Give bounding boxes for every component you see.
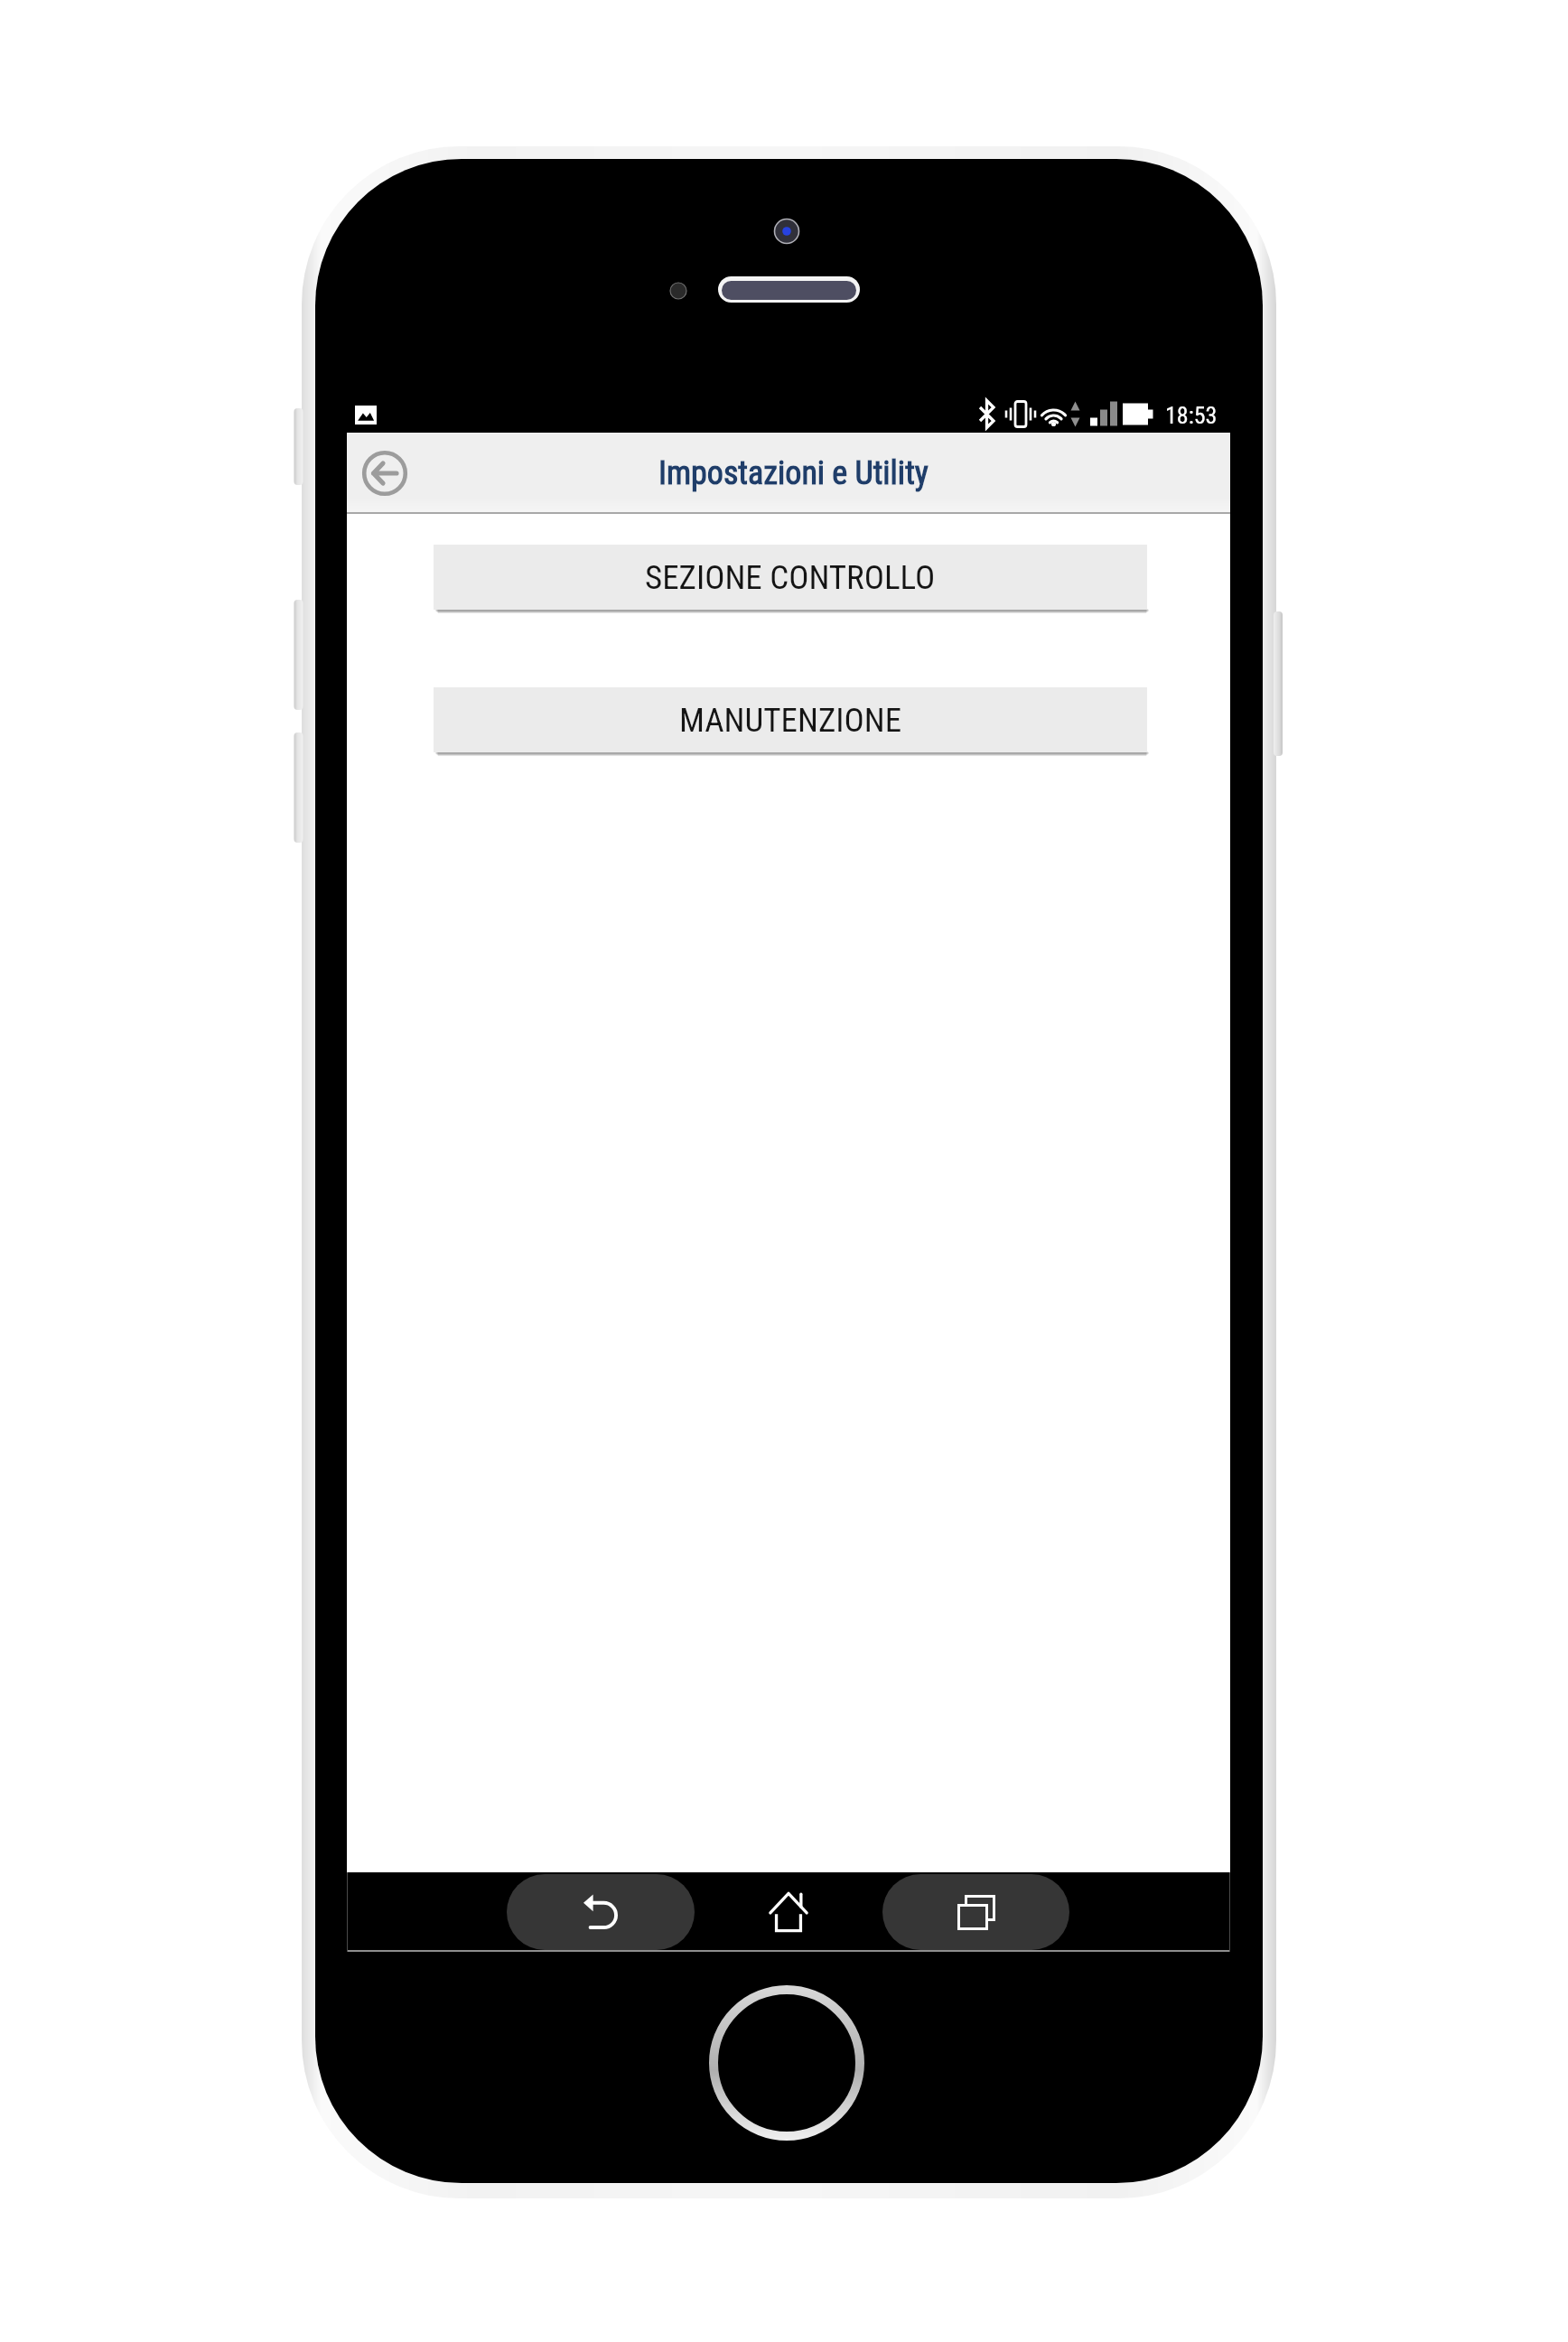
button[interactable]: Recent apps: [882, 1874, 1069, 1950]
staticText: Impostazioni e Utility: [658, 454, 929, 492]
button[interactable]: Back: [507, 1874, 695, 1950]
button[interactable]: Home: [758, 1883, 819, 1941]
staticText: SEZIONE CONTROLLO: [645, 558, 936, 597]
button[interactable]: SEZIONE CONTROLLO: [434, 545, 1147, 610]
button[interactable]: Back: [361, 450, 408, 497]
staticText: MANUTENZIONE: [679, 701, 902, 740]
staticText: 18:53: [1165, 402, 1218, 429]
button[interactable]: MANUTENZIONE: [434, 687, 1147, 752]
